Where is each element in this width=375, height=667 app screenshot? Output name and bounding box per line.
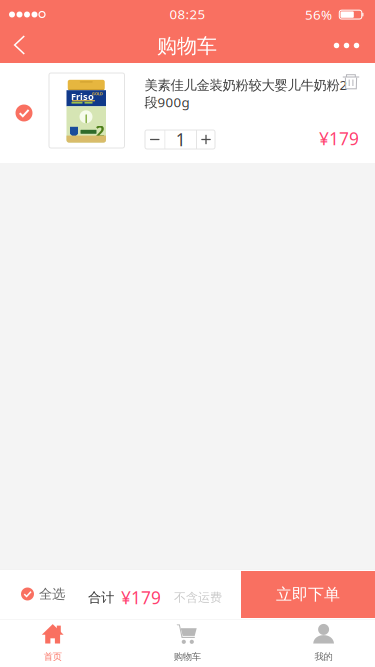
staticText: 不含运费 bbox=[174, 590, 222, 605]
staticText: 购物车 bbox=[174, 651, 201, 662]
staticText: 全选 bbox=[39, 586, 65, 602]
button[interactable]: More options bbox=[324, 28, 368, 63]
button[interactable]: Back bbox=[0, 27, 41, 62]
staticText: 08:25 bbox=[169, 5, 205, 23]
staticText: 立即下单 bbox=[276, 585, 340, 604]
button[interactable]: Delete item bbox=[335, 66, 367, 98]
staticText: ¥179 bbox=[121, 586, 161, 609]
button[interactable]: 全选 bbox=[0, 569, 80, 619]
staticText: 首页 bbox=[44, 651, 62, 662]
button[interactable]: 首页 bbox=[0, 619, 105, 667]
button[interactable]: Decrease quantity bbox=[145, 130, 164, 149]
staticText: 合计 bbox=[88, 589, 114, 606]
staticText: GOLD bbox=[92, 91, 103, 96]
staticText: ¥179 bbox=[319, 127, 359, 150]
button[interactable]: 我的 bbox=[271, 619, 375, 667]
staticText: 我的 bbox=[315, 651, 333, 662]
staticText: 1 bbox=[176, 128, 186, 151]
staticText: 2 bbox=[95, 121, 104, 142]
staticText: 美素佳儿金装奶粉较大婴儿牛奶粉2段900g bbox=[144, 76, 347, 111]
button[interactable]: 购物车 bbox=[135, 619, 240, 667]
button[interactable]: Increase quantity bbox=[197, 130, 215, 149]
button[interactable]: 立即下单 bbox=[241, 571, 375, 618]
staticText: 购物车 bbox=[157, 34, 217, 58]
staticText: 56% bbox=[305, 6, 332, 23]
staticText: Friso bbox=[71, 90, 94, 102]
button[interactable]: Item selected bbox=[2, 91, 46, 135]
